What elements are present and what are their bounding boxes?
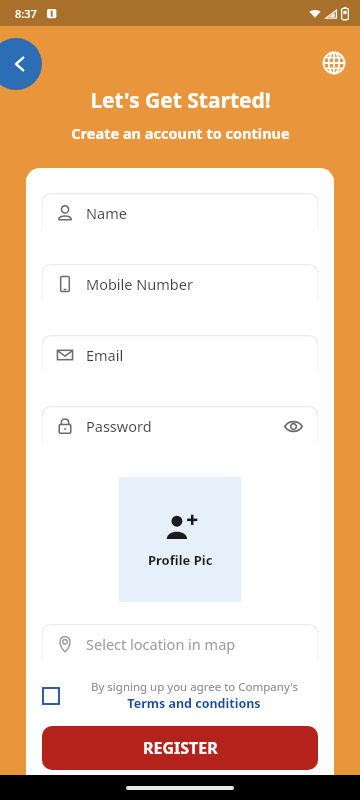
staticText: Email <box>86 345 124 365</box>
button[interactable]: Name <box>42 191 318 235</box>
staticText: Name <box>86 203 127 223</box>
button[interactable]: Add profile picture <box>119 477 241 602</box>
button[interactable]: Email <box>42 333 318 377</box>
staticText: Profile Pic <box>148 551 213 569</box>
button[interactable]: By signing up you agree to Company's <box>42 679 318 712</box>
staticText: 8:37 <box>15 6 37 21</box>
staticText: Password <box>86 416 152 436</box>
button[interactable]: Mobile Number <box>42 262 318 306</box>
button[interactable]: Show password <box>282 415 304 437</box>
button[interactable]: Select location in map <box>42 622 318 666</box>
button[interactable]: Password <box>42 404 318 448</box>
staticText: Select location in map <box>86 634 236 654</box>
staticText: Let's Get Started! <box>90 86 271 115</box>
button[interactable]: Language <box>316 45 352 81</box>
staticText: By signing up you agree to Company's <box>91 679 298 695</box>
staticText: REGISTER <box>143 737 218 759</box>
button[interactable]: REGISTER <box>42 726 318 770</box>
staticText: Create an account to continue <box>71 123 290 143</box>
staticText: Mobile Number <box>86 274 193 294</box>
staticText: Terms and conditions <box>127 695 261 712</box>
button[interactable]: Back <box>0 38 42 90</box>
